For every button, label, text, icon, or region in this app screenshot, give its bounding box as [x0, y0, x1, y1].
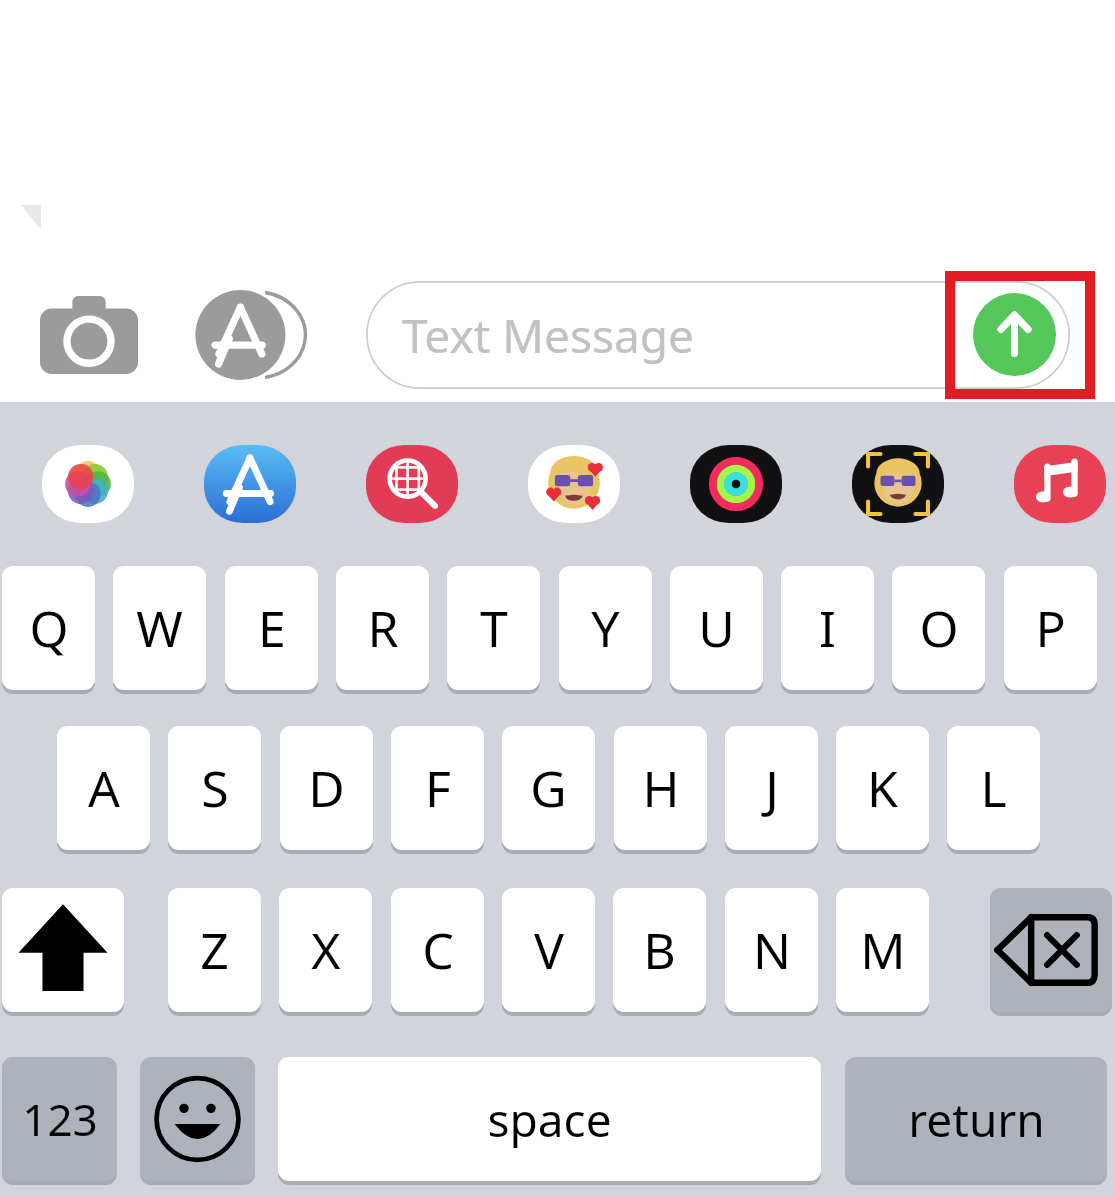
staticText: I — [819, 594, 836, 662]
staticText: J — [765, 754, 779, 822]
staticText: T — [480, 594, 508, 662]
staticText: return — [908, 1088, 1045, 1151]
staticText: O — [919, 594, 959, 662]
button[interactable]: Photos — [42, 445, 134, 523]
button[interactable]: O — [892, 566, 985, 690]
button[interactable]: T — [447, 566, 540, 690]
button[interactable]: Memoji — [528, 445, 620, 523]
staticText: U — [698, 594, 735, 662]
button[interactable]: F — [391, 726, 484, 850]
button[interactable]: M — [836, 888, 929, 1012]
button[interactable]: Music — [1014, 445, 1106, 523]
staticText: C — [422, 916, 454, 984]
button[interactable]: A — [57, 726, 150, 850]
button[interactable]: Send — [973, 293, 1056, 376]
button[interactable]: U — [670, 566, 763, 690]
button[interactable]: 123 — [2, 1057, 117, 1181]
button[interactable]: P — [1004, 566, 1097, 690]
button[interactable]: space — [278, 1057, 821, 1181]
staticText: Y — [591, 594, 620, 662]
staticText: P — [1035, 594, 1066, 662]
button[interactable]: Z — [168, 888, 261, 1012]
button[interactable]: I — [781, 566, 874, 690]
staticText: 123 — [22, 1089, 98, 1149]
button[interactable]: E — [225, 566, 318, 690]
staticText: B — [643, 916, 676, 984]
button[interactable]: J — [725, 726, 818, 850]
button[interactable]: return — [845, 1057, 1107, 1181]
staticText: E — [258, 594, 286, 662]
button[interactable]: Shift — [2, 888, 124, 1012]
staticText: Text Message — [402, 304, 695, 367]
button[interactable]: B — [613, 888, 706, 1012]
staticText: S — [201, 754, 229, 822]
staticText: A — [88, 754, 120, 822]
button[interactable]: Text Message — [366, 281, 1070, 389]
button[interactable]: Emoji — [140, 1057, 255, 1181]
staticText: X — [311, 916, 341, 984]
button[interactable]: App Store — [194, 290, 310, 380]
button[interactable]: Memoji camera — [852, 445, 944, 523]
button[interactable]: Y — [559, 566, 652, 690]
button[interactable]: App Store — [204, 445, 296, 523]
button[interactable]: Activity — [690, 445, 782, 523]
button[interactable]: X — [279, 888, 372, 1012]
staticText: N — [753, 916, 791, 984]
button[interactable]: K — [836, 726, 929, 850]
button[interactable]: Camera — [40, 296, 138, 374]
button[interactable]: Sticker search — [366, 445, 458, 523]
staticText: M — [860, 916, 906, 984]
staticText: R — [367, 594, 399, 662]
staticText: G — [530, 754, 567, 822]
button[interactable]: G — [502, 726, 595, 850]
button[interactable]: C — [391, 888, 484, 1012]
staticText: Z — [200, 916, 229, 984]
staticText: W — [136, 594, 183, 662]
staticText: L — [980, 754, 1007, 822]
button[interactable]: S — [168, 726, 261, 850]
button[interactable]: V — [502, 888, 595, 1012]
button[interactable]: R — [336, 566, 429, 690]
staticText: F — [425, 754, 451, 822]
button[interactable]: Delete — [990, 888, 1112, 1012]
staticText: H — [642, 754, 680, 822]
staticText: Q — [29, 594, 69, 662]
staticText: space — [487, 1088, 612, 1151]
button[interactable]: N — [725, 888, 818, 1012]
button[interactable]: Q — [2, 566, 95, 690]
staticText: K — [867, 754, 898, 822]
button[interactable]: H — [614, 726, 707, 850]
staticText: D — [308, 754, 345, 822]
button[interactable]: L — [947, 726, 1040, 850]
button[interactable]: W — [113, 566, 206, 690]
staticText: V — [534, 916, 564, 984]
button[interactable]: D — [280, 726, 373, 850]
